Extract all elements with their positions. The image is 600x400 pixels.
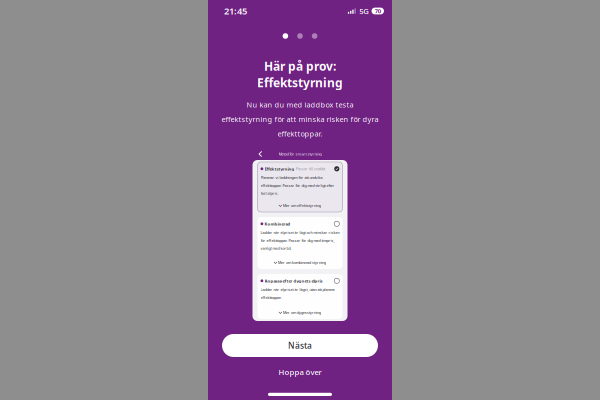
staticText: 5G — [359, 6, 369, 16]
staticText: Mer om effektstyrning — [283, 203, 321, 208]
staticText: vanligt med kortid. — [260, 246, 291, 251]
staticText: effekttoppar. — [260, 295, 281, 300]
staticText: Effektstyrning — [264, 166, 294, 172]
staticText: 70 — [375, 7, 381, 15]
staticText: Mer om kombinerad styrning — [278, 260, 326, 265]
staticText: Nu kan du med laddbox testa — [246, 100, 353, 110]
staticText: Metod för smart styrning — [278, 151, 321, 157]
button[interactable]: Hoppa över — [222, 357, 378, 387]
staticText: effekttoppar. — [277, 129, 322, 139]
staticText: Laddar när elpriset är lågt och minskar … — [260, 230, 339, 235]
staticText: fast elpris. — [260, 191, 278, 196]
staticText: Anpassa efter dygnets elpris — [264, 278, 322, 284]
staticText: Nästa — [288, 340, 312, 351]
button[interactable]: Nästa — [222, 334, 378, 357]
button[interactable]: Anpassa efter dygnets elpris — [257, 274, 342, 319]
staticText: effektstyrning för att minska risken för… — [221, 114, 378, 124]
staticText: Här på prov: — [264, 58, 336, 74]
staticText: Hoppa över — [278, 367, 321, 377]
button[interactable]: Back — [255, 149, 265, 159]
staticText: Passar till snabbt — [296, 166, 325, 171]
staticText: Planerar vi laddningen för att undvika — [260, 175, 322, 180]
button[interactable]: Effektstyrning — [257, 162, 342, 212]
button[interactable]: Kombinerad — [257, 217, 342, 269]
staticText: Effektstyrning — [257, 74, 343, 91]
staticText: Laddar när elpriset är lägst, utan att p… — [260, 287, 334, 292]
staticText: effekttoppar. Passar för dig med rörligt… — [260, 183, 334, 188]
staticText: 21:45 — [224, 5, 247, 17]
staticText: för effekttoppar. Passar för dig med tim… — [260, 238, 334, 243]
staticText: Mer om dygnsstyrning — [283, 310, 321, 315]
staticText: Kombinerad — [264, 221, 290, 227]
